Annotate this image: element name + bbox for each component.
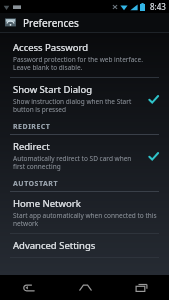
button[interactable]: Back bbox=[0, 275, 57, 300]
staticText: Start app automatically when connected t… bbox=[13, 211, 157, 228]
button[interactable]: Redirect bbox=[0, 135, 169, 176]
staticText: Show Start Dialog bbox=[13, 83, 93, 96]
staticText: 8:43 bbox=[150, 1, 166, 12]
button[interactable]: Recents bbox=[113, 275, 169, 300]
staticText: Redirect bbox=[13, 140, 50, 153]
staticText: Show instruction dialog when the Start b… bbox=[13, 97, 132, 114]
staticText: Advanced Settings bbox=[13, 239, 96, 252]
other: App icon bbox=[4, 16, 17, 29]
staticText: Password protection for the web interfac… bbox=[13, 55, 143, 72]
staticText: AUTOSTART bbox=[13, 179, 58, 189]
staticText: Access Password bbox=[13, 41, 89, 54]
button[interactable]: Show Start Dialog bbox=[0, 78, 169, 119]
button[interactable]: Access Password bbox=[0, 36, 169, 77]
staticText: Preferences bbox=[23, 16, 79, 30]
button[interactable]: Toggle Show Start Dialog bbox=[145, 91, 161, 107]
staticText: Home Network bbox=[13, 197, 81, 210]
staticText: REDIRECT bbox=[13, 122, 51, 132]
staticText: Automatically redirect to SD card when f… bbox=[13, 154, 132, 171]
button[interactable]: Advanced Settings bbox=[0, 234, 169, 257]
button[interactable]: Home bbox=[57, 275, 113, 300]
button[interactable]: App icon bbox=[0, 13, 169, 32]
button[interactable]: Home Network bbox=[0, 192, 169, 233]
button[interactable]: Toggle Redirect bbox=[145, 148, 161, 164]
